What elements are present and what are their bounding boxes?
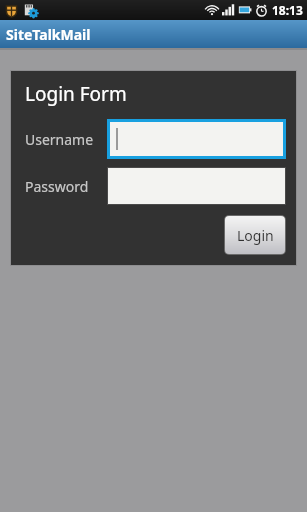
- staticText: 18:13: [272, 2, 303, 18]
- staticText: Username: [25, 130, 107, 149]
- button[interactable]: Login: [225, 216, 285, 254]
- button[interactable]: [110, 122, 283, 156]
- staticText: Login Form: [25, 81, 127, 107]
- staticText: SiteTalkMail: [6, 25, 91, 44]
- staticText: Login: [237, 226, 274, 245]
- staticText: Password: [25, 177, 107, 196]
